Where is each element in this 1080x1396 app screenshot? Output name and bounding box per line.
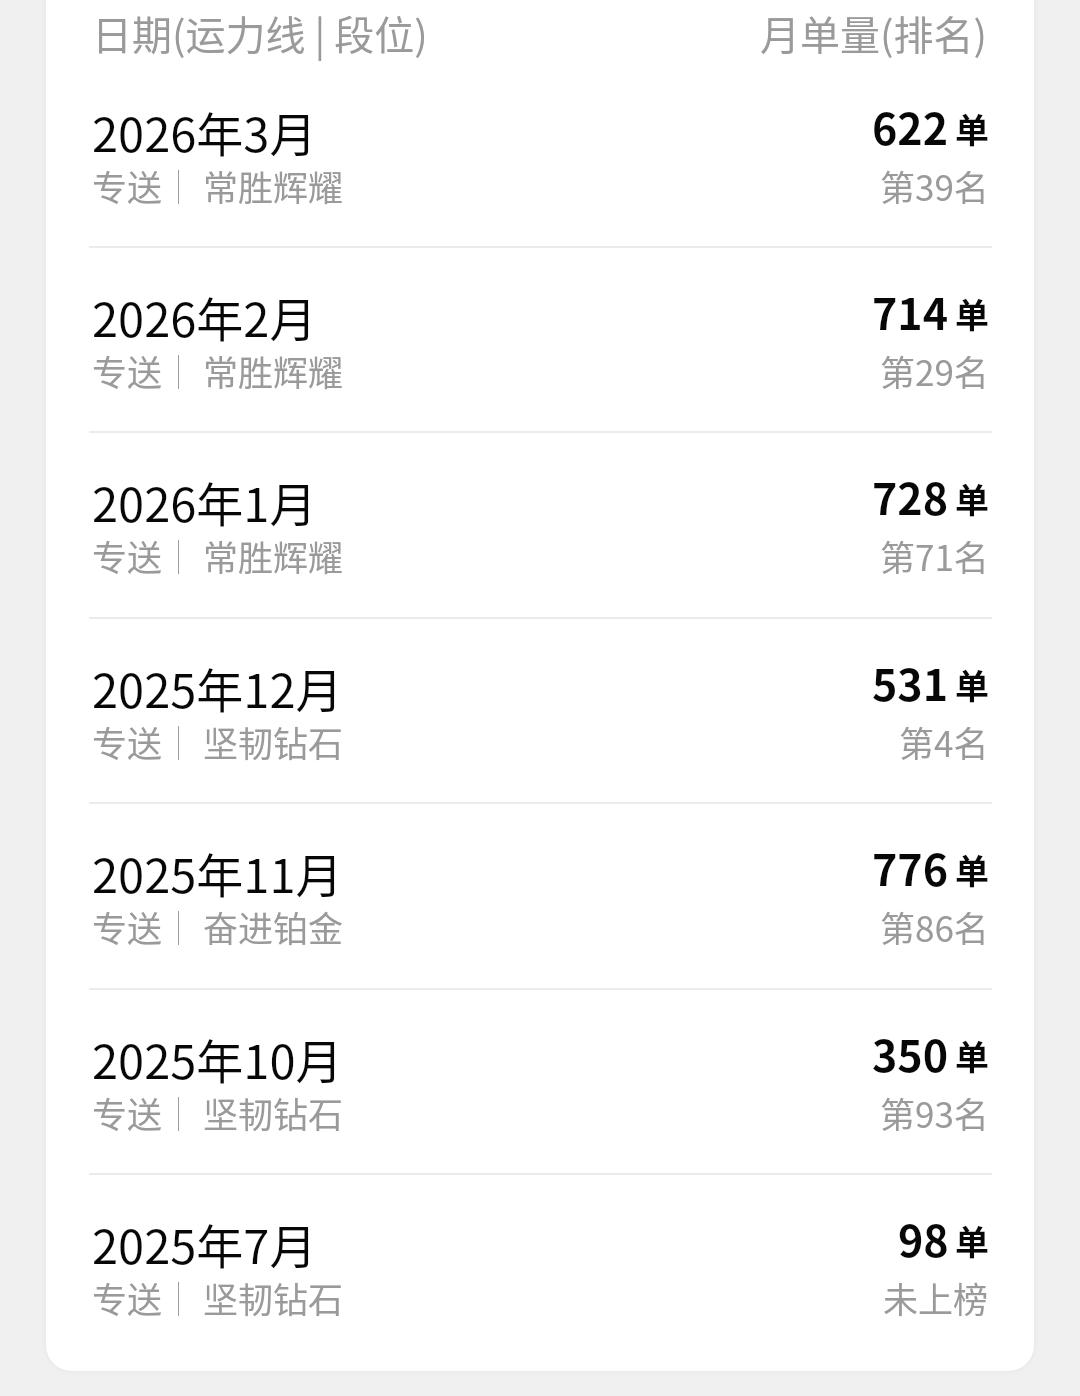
staticText: 第93名 bbox=[880, 1087, 989, 1138]
button[interactable]: 2025年11月 bbox=[46, 802, 1034, 987]
staticText: 2025年11月 bbox=[92, 838, 343, 906]
staticText: 专送 bbox=[92, 901, 163, 952]
staticText: 2025年12月 bbox=[92, 653, 343, 721]
staticText: 单 bbox=[955, 660, 989, 709]
staticText: 坚韧钻石 bbox=[203, 716, 344, 767]
staticText: 776 bbox=[872, 836, 949, 898]
staticText: 2026年2月 bbox=[92, 282, 317, 350]
staticText: 单 bbox=[955, 289, 989, 338]
staticText: 2026年1月 bbox=[92, 467, 317, 535]
button[interactable]: 2026年3月 bbox=[46, 61, 1034, 246]
staticText: 2026年3月 bbox=[92, 97, 317, 165]
staticText: 2025年10月 bbox=[92, 1024, 343, 1092]
staticText: 专送 bbox=[92, 345, 163, 396]
staticText: 奋进铂金 bbox=[203, 901, 344, 952]
staticText: 单 bbox=[955, 845, 989, 894]
staticText: 单 bbox=[955, 104, 989, 153]
staticText: 坚韧钻石 bbox=[203, 1272, 344, 1323]
staticText: 第29名 bbox=[880, 345, 989, 396]
staticText: 单 bbox=[955, 1216, 989, 1265]
staticText: 第71名 bbox=[880, 530, 989, 581]
staticText: 常胜辉耀 bbox=[203, 345, 344, 396]
staticText: 622 bbox=[872, 95, 949, 157]
staticText: 月单量(排名) bbox=[760, 4, 988, 62]
staticText: 专送 bbox=[92, 160, 163, 211]
staticText: 专送 bbox=[92, 1087, 163, 1138]
staticText: 第39名 bbox=[880, 160, 989, 211]
staticText: 专送 bbox=[92, 1272, 163, 1323]
staticText: 单 bbox=[955, 474, 989, 523]
staticText: 531 bbox=[872, 651, 949, 713]
staticText: 常胜辉耀 bbox=[203, 160, 344, 211]
staticText: 350 bbox=[872, 1022, 949, 1084]
staticText: 728 bbox=[872, 465, 949, 527]
button[interactable]: 2026年1月 bbox=[46, 431, 1034, 616]
staticText: 坚韧钻石 bbox=[203, 1087, 344, 1138]
staticText: 第4名 bbox=[899, 716, 989, 767]
staticText: 未上榜 bbox=[883, 1272, 989, 1323]
staticText: 第86名 bbox=[880, 901, 989, 952]
button[interactable]: 2025年10月 bbox=[46, 988, 1034, 1173]
button[interactable]: 2026年2月 bbox=[46, 246, 1034, 431]
staticText: 714 bbox=[872, 280, 949, 342]
staticText: 98 bbox=[898, 1207, 949, 1269]
staticText: 专送 bbox=[92, 530, 163, 581]
staticText: 专送 bbox=[92, 716, 163, 767]
staticText: 单 bbox=[955, 1031, 989, 1080]
staticText: 2025年7月 bbox=[92, 1209, 317, 1277]
button[interactable]: 2025年12月 bbox=[46, 617, 1034, 802]
button[interactable]: 日期(运力线 | 段位) bbox=[46, 0, 1034, 61]
staticText: 常胜辉耀 bbox=[203, 530, 344, 581]
button[interactable]: 2025年7月 bbox=[46, 1173, 1034, 1358]
staticText: 日期(运力线 | 段位) bbox=[92, 4, 428, 62]
